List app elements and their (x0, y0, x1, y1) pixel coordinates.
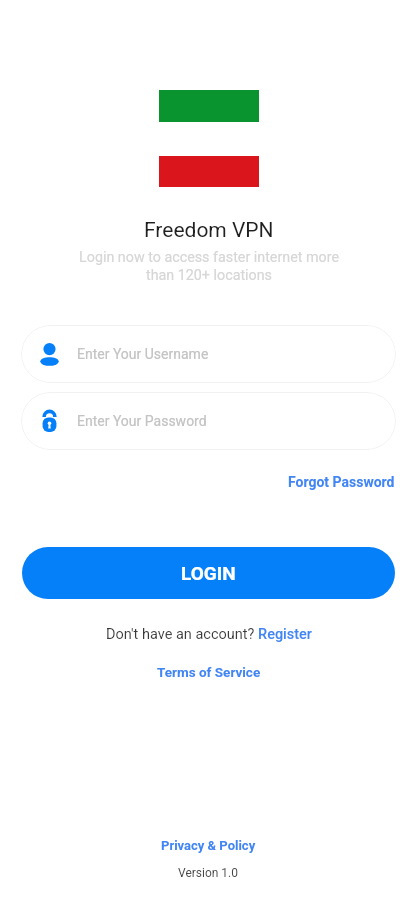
staticText: Freedom VPN (144, 218, 274, 243)
button[interactable]: Privacy & Policy (161, 838, 256, 853)
button[interactable]: Terms of Service (157, 664, 261, 680)
staticText: Don't have an account? (106, 626, 258, 643)
staticText: Version 1.0 (178, 866, 239, 880)
button[interactable]: Register (258, 626, 312, 643)
staticText: Login now to access faster internet more… (73, 249, 345, 283)
staticText: Forgot Password (288, 474, 395, 490)
staticText: LOGIN (181, 562, 236, 584)
staticText: Enter Your Password (77, 413, 207, 429)
button[interactable]: Password (21, 392, 396, 450)
button[interactable]: Username (21, 325, 396, 383)
staticText: Register (258, 626, 312, 643)
staticText: Enter Your Username (77, 346, 209, 362)
staticText: Terms of Service (157, 664, 261, 680)
button[interactable]: LOGIN (22, 547, 395, 599)
button[interactable]: Forgot Password (288, 474, 417, 490)
staticText: Privacy & Policy (161, 838, 256, 853)
